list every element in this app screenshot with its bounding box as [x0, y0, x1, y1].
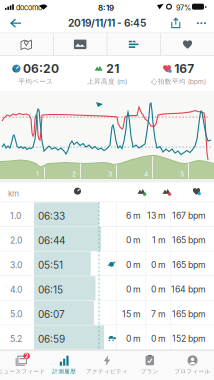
staticText: 計測履歴 [52, 368, 76, 375]
staticText: 06:20 [23, 61, 59, 76]
button[interactable]: アクティビティ [86, 350, 128, 380]
staticText: 13 m [147, 210, 166, 221]
staticText: 21 [106, 61, 119, 76]
staticText: 2019/11/11 - 6:45 [68, 17, 146, 29]
staticText: 0 m [126, 235, 141, 245]
staticText: 1.0 [10, 211, 21, 221]
staticText: 0 m [151, 260, 166, 270]
staticText: docomo [16, 3, 42, 12]
staticText: 1 [36, 170, 39, 178]
button[interactable]: Heart rate [161, 33, 214, 55]
staticText: 上昇高度 (m) [87, 77, 127, 86]
staticText: 7 m [151, 309, 166, 319]
button[interactable]: Map [0, 33, 53, 55]
button[interactable]: Back [0, 18, 24, 28]
staticText: 4.0 [10, 284, 22, 295]
staticText: 165 bpm [172, 309, 206, 319]
staticText: 97% [176, 3, 191, 12]
staticText: km [8, 189, 19, 198]
button[interactable]: 2 [0, 350, 43, 380]
staticText: 平均ペース [18, 77, 53, 86]
staticText: 05:51 [38, 259, 63, 271]
staticText: 3 [108, 170, 112, 178]
button[interactable]: 計測履歴 [43, 350, 86, 380]
staticText: 0 m [151, 333, 166, 344]
button[interactable]: プラン [128, 350, 171, 380]
staticText: 3.0 [10, 260, 22, 270]
button[interactable]: Share [171, 18, 181, 29]
staticText: 2 [25, 352, 29, 360]
staticText: 2 [72, 170, 76, 178]
staticText: 06:33 [38, 210, 65, 222]
staticText: 5.0 [10, 309, 22, 319]
staticText: 06:15 [38, 284, 63, 296]
staticText: 1 m [152, 235, 166, 245]
staticText: 06:44 [38, 235, 65, 247]
staticText: 167 bpm [172, 210, 206, 221]
staticText: 164 bpm [171, 284, 206, 295]
staticText: 06:59 [38, 333, 65, 345]
button[interactable]: Photos [54, 33, 107, 55]
staticText: 4 [144, 170, 148, 178]
staticText: 2.0 [10, 235, 22, 246]
staticText: 167 [174, 61, 194, 76]
staticText: 0 m [126, 284, 141, 295]
staticText: 5.2 [10, 334, 22, 344]
staticText: 0 m [126, 260, 141, 270]
staticText: 152 bpm [172, 333, 206, 344]
staticText: 0 m [151, 284, 166, 295]
staticText: 06:07 [38, 308, 65, 320]
staticText: 5 [180, 170, 184, 178]
staticText: プラン [141, 368, 159, 375]
staticText: ニュースフィード [0, 368, 45, 375]
button[interactable]: More [189, 22, 214, 24]
staticText: 165 bpm [172, 235, 206, 245]
staticText: 15 m [122, 309, 141, 319]
staticText: 心拍数平均 (bpm) [151, 77, 206, 86]
staticText: アクティビティ [86, 368, 128, 375]
staticText: 165 bpm [172, 260, 206, 270]
button[interactable]: Stats [107, 33, 160, 55]
button[interactable]: プロフィール [171, 350, 214, 380]
staticText: プロフィール [175, 368, 211, 375]
staticText: 8:19 [98, 3, 114, 13]
staticText: 0 m [126, 333, 141, 344]
staticText: 6 m [126, 210, 141, 221]
